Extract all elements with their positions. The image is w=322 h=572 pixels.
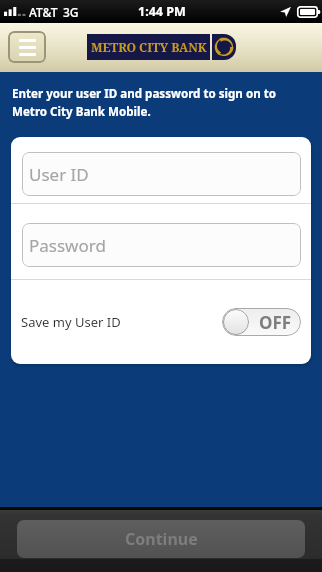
button[interactable]: Menu — [8, 31, 46, 63]
staticText: 1:44 PM — [138, 3, 186, 20]
staticText: 3G — [63, 4, 79, 20]
staticText: Continue — [125, 528, 198, 550]
staticText: Save my User ID — [21, 313, 121, 331]
staticText: AT&T — [29, 4, 58, 20]
staticText: Password — [29, 234, 106, 257]
button[interactable]: Save my User ID, off — [222, 308, 301, 336]
button[interactable]: Continue — [17, 520, 305, 558]
staticText: Enter your user ID and password to sign … — [12, 86, 276, 120]
button[interactable]: Save my User ID — [11, 280, 311, 364]
button[interactable]: Password — [22, 223, 301, 267]
staticText: METRO CITY BANK — [91, 39, 207, 56]
staticText: OFF — [259, 311, 292, 334]
staticText: User ID — [29, 163, 89, 186]
button[interactable]: User ID — [22, 152, 301, 196]
